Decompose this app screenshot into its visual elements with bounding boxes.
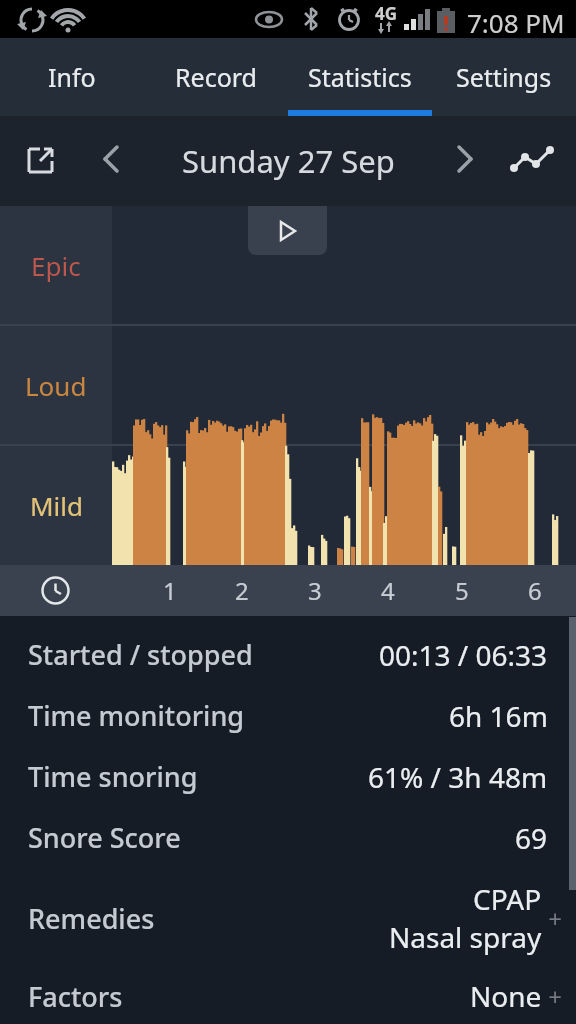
staticText: 6 [528, 574, 542, 607]
staticText: Loud [25, 368, 87, 403]
staticText: Sunday 27 Sep [182, 140, 395, 182]
staticText: 7:08 PM [467, 5, 565, 40]
staticText: Statistics [308, 60, 412, 94]
button[interactable]: Statistics [288, 38, 432, 116]
staticText: Started / stopped [28, 636, 253, 673]
staticText: Nasal spray [389, 918, 542, 956]
staticText: CPAP [473, 880, 542, 918]
staticText: + [542, 980, 562, 1013]
staticText: + [542, 902, 562, 935]
button[interactable]: Record [144, 38, 288, 116]
staticText: Mild [30, 488, 83, 523]
staticText: Remedies [28, 900, 155, 937]
staticText: Factors [28, 978, 123, 1015]
button[interactable] [92, 144, 128, 180]
staticText: 00:13 / 06:33 [379, 636, 548, 674]
staticText: 1 [163, 574, 177, 607]
staticText: 69 [515, 819, 548, 857]
staticText: 5 [455, 574, 469, 607]
staticText: 4G [375, 2, 398, 25]
button[interactable] [508, 142, 560, 194]
staticText: 4 [381, 574, 395, 607]
staticText: Settings [456, 60, 552, 94]
staticText: Time snoring [28, 758, 198, 795]
button[interactable]: Info [0, 38, 144, 116]
button[interactable] [20, 141, 60, 181]
staticText: Record [175, 60, 257, 94]
button[interactable]: Settings [432, 38, 576, 116]
button[interactable] [446, 144, 482, 180]
staticText: 2 [235, 574, 249, 607]
staticText: Info [48, 60, 96, 94]
staticText: Snore Score [28, 819, 181, 856]
button[interactable]: Remedies [0, 868, 576, 968]
button[interactable] [248, 206, 327, 255]
staticText: Epic [31, 248, 81, 283]
staticText: 61% / 3h 48m [368, 758, 548, 796]
staticText: 6h 16m [449, 697, 548, 735]
button[interactable]: Factors [0, 968, 576, 1024]
staticText: None [470, 977, 542, 1015]
staticText: 3 [308, 574, 322, 607]
staticText: Time monitoring [28, 697, 245, 734]
